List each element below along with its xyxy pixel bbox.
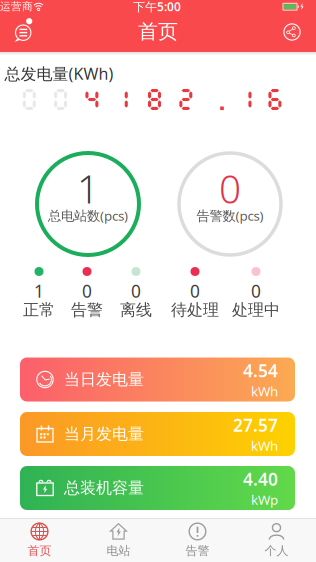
staticText: 1	[34, 279, 44, 302]
button[interactable]: 当日发电量	[20, 357, 295, 401]
button[interactable]: 当月发电量	[20, 412, 295, 456]
staticText: 总电站数(pcs)	[48, 207, 128, 224]
staticText: 0	[219, 163, 241, 214]
button[interactable]: 分享	[283, 23, 300, 40]
staticText: 下午5:00	[133, 0, 181, 14]
staticText: 运营商	[0, 0, 33, 13]
button[interactable]: 个人	[237, 518, 316, 562]
staticText: 告警	[71, 300, 103, 320]
staticText: kWp	[251, 491, 278, 508]
staticText: 当月发电量	[64, 424, 144, 444]
staticText: 首页	[27, 543, 51, 558]
staticText: kWh	[251, 437, 278, 454]
staticText: 总装机容量	[64, 478, 144, 498]
staticText: 4.40	[243, 468, 278, 491]
staticText: 个人	[264, 543, 288, 558]
staticText: 4.54	[243, 359, 278, 382]
staticText: kWh	[251, 382, 278, 400]
staticText: 处理中	[232, 300, 280, 320]
button[interactable]: 电站	[79, 518, 158, 562]
staticText: 0	[251, 279, 261, 302]
button[interactable]: 总装机容量	[20, 466, 295, 510]
staticText: 当日发电量	[64, 370, 144, 389]
staticText: 告警	[185, 543, 209, 558]
staticText: 首页	[138, 19, 178, 44]
staticText: 0	[131, 279, 141, 302]
staticText: 正常	[23, 300, 55, 320]
button[interactable]: 消息	[11, 17, 37, 43]
staticText: 待处理	[171, 300, 219, 320]
staticText: 电站	[106, 543, 130, 558]
staticText: 告警数(pcs)	[196, 207, 263, 224]
staticText: 离线	[120, 300, 152, 320]
staticText: 总发电量(KWh)	[4, 63, 113, 84]
staticText: 1	[77, 163, 99, 214]
button[interactable]: 告警	[158, 518, 237, 562]
staticText: 0	[190, 279, 200, 302]
staticText: 27.57	[233, 414, 278, 437]
button[interactable]: 首页	[0, 518, 79, 562]
staticText: 0	[82, 279, 92, 302]
